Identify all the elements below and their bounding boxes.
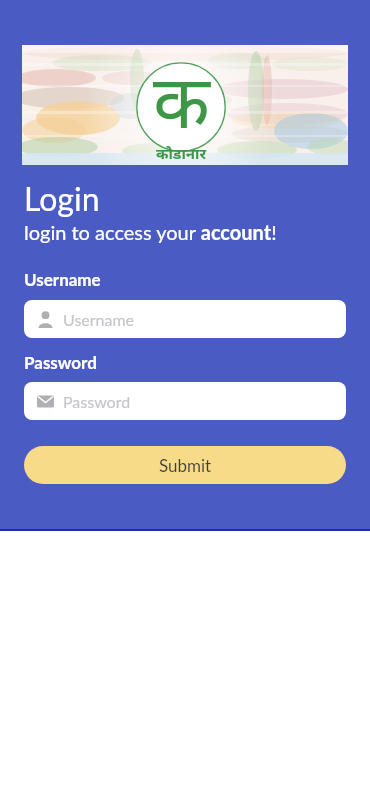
- button[interactable]: Submit: [24, 446, 346, 484]
- staticText: Login: [24, 179, 100, 217]
- staticText: Username: [24, 269, 101, 289]
- button[interactable]: Username: [24, 300, 346, 338]
- staticText: Username: [63, 310, 135, 329]
- staticText: Submit: [159, 455, 212, 475]
- staticText: कोडानार: [156, 143, 207, 162]
- staticText: क: [153, 49, 210, 150]
- button[interactable]: Password: [24, 382, 346, 420]
- staticText: login to access your account!: [24, 220, 277, 244]
- staticText: Password: [24, 352, 97, 372]
- staticText: Password: [63, 392, 131, 411]
